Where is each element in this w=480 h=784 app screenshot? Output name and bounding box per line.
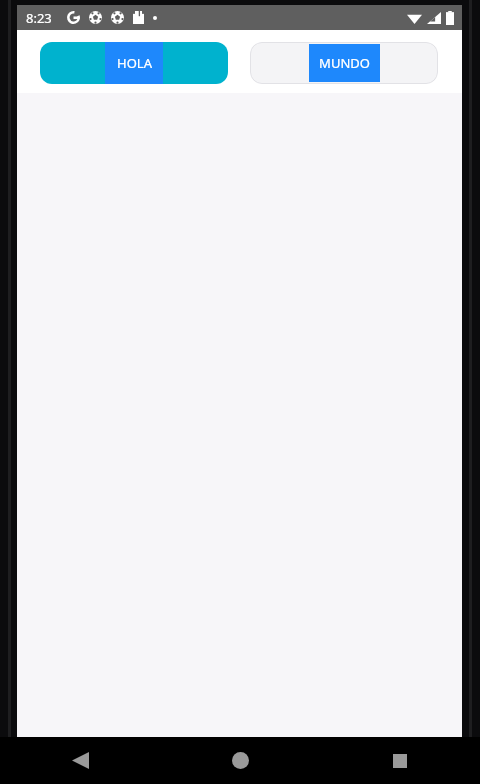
button[interactable]: MUNDO [250,42,438,84]
staticText: 8:23 [26,9,52,27]
button[interactable]: HOLA [40,42,228,84]
button[interactable]: Recent apps [320,737,480,784]
staticText: HOLA [117,54,152,72]
button[interactable]: Home [160,737,320,784]
staticText: MUNDO [319,54,370,72]
button[interactable]: Back [0,737,160,784]
